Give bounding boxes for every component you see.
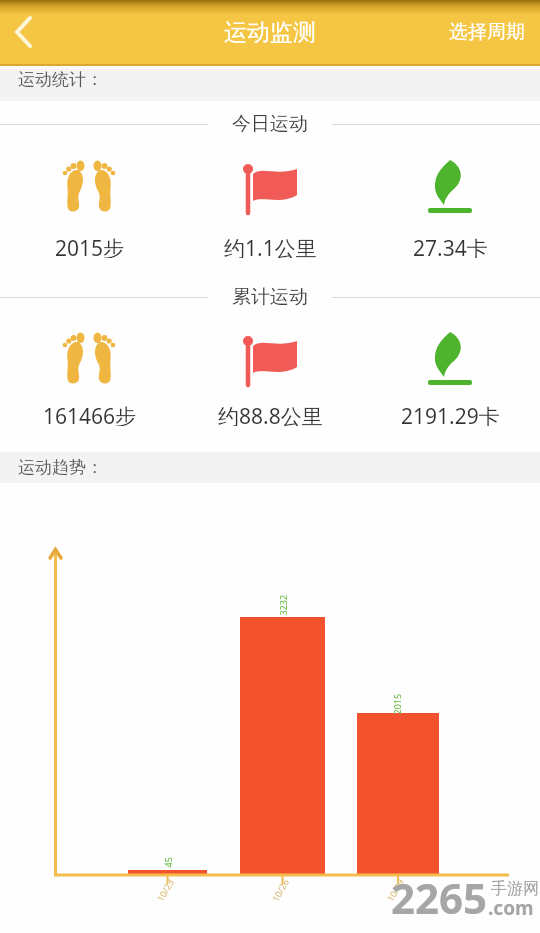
staticText: 约1.1公里 xyxy=(224,234,317,258)
button[interactable]: 选择周期 xyxy=(449,20,525,44)
staticText: 运动监测 xyxy=(224,18,316,47)
staticText: 今日运动 xyxy=(232,112,308,136)
staticText: .com xyxy=(488,895,534,921)
staticText: 2015 xyxy=(390,693,402,714)
staticText: 161466步 xyxy=(43,402,137,426)
staticText: 10/23 xyxy=(154,877,176,903)
staticText: 2265 xyxy=(391,869,488,926)
staticText: 运动趋势： xyxy=(18,457,103,478)
staticText: 10/29 xyxy=(384,877,406,903)
staticText: 2191.29卡 xyxy=(401,402,500,426)
button[interactable] xyxy=(8,14,44,50)
staticText: 约88.8公里 xyxy=(218,402,323,426)
staticText: 累计运动 xyxy=(232,285,308,309)
staticText: 45 xyxy=(161,856,173,867)
staticText: 选择周期 xyxy=(449,20,525,44)
staticText: 27.34卡 xyxy=(413,234,488,258)
staticText: 2015步 xyxy=(55,234,125,258)
staticText: 运动统计： xyxy=(18,69,103,90)
staticText: 10/26 xyxy=(269,877,291,903)
staticText: 手游网 xyxy=(491,879,539,899)
staticText: 3232 xyxy=(276,594,288,615)
